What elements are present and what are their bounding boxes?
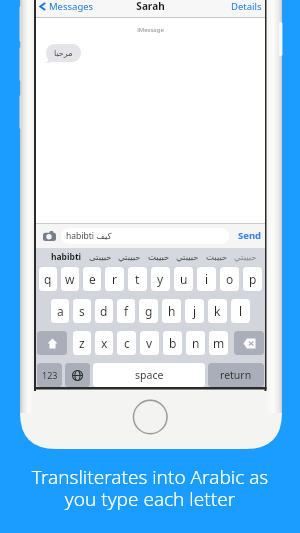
staticText: Messages — [49, 0, 94, 13]
button[interactable]: حبيبتي — [231, 248, 260, 266]
staticText: Sarah — [36, 0, 265, 13]
button[interactable]: t — [128, 267, 147, 291]
button[interactable]: x — [95, 331, 113, 355]
button[interactable]: p — [243, 267, 262, 291]
staticText: حبيبتى — [89, 252, 112, 262]
staticText: habibti كيف — [66, 230, 112, 242]
staticText: a — [57, 303, 64, 319]
staticText: g — [145, 303, 153, 319]
button[interactable]: j — [185, 299, 204, 323]
button[interactable]: k — [208, 299, 227, 323]
button[interactable]: حبيبتي — [173, 248, 202, 266]
staticText: r — [112, 271, 117, 287]
button[interactable]: o — [220, 267, 239, 291]
button[interactable]: m — [209, 331, 228, 355]
staticText: n — [192, 335, 200, 351]
staticText: حبيبتي — [118, 252, 141, 262]
button[interactable]: q — [39, 267, 57, 291]
staticText: Transliterates into Arabic as you type e… — [0, 464, 300, 512]
button[interactable]: Shift — [37, 331, 67, 355]
staticText: iMessage — [36, 26, 265, 34]
button[interactable]: habibti كيف — [61, 228, 229, 244]
staticText: space — [135, 368, 164, 382]
button[interactable]: r — [105, 267, 124, 291]
button[interactable]: Details — [227, 0, 265, 18]
button[interactable]: g — [139, 299, 158, 323]
staticText: l — [239, 303, 243, 319]
staticText: s — [79, 303, 85, 319]
button[interactable]: i — [197, 267, 216, 291]
staticText: e — [89, 271, 96, 287]
staticText: حبيبتي — [176, 252, 199, 262]
button[interactable]: Camera — [41, 228, 57, 244]
button[interactable]: Send — [238, 229, 262, 242]
staticText: w — [65, 271, 75, 287]
staticText: v — [146, 335, 153, 351]
button[interactable]: s — [73, 299, 91, 323]
button[interactable]: w — [61, 267, 79, 291]
button[interactable]: e — [83, 267, 101, 291]
button[interactable]: 123 — [37, 363, 62, 387]
staticText: j — [193, 303, 197, 319]
staticText: return — [220, 368, 252, 382]
staticText: 123 — [42, 369, 58, 381]
button[interactable]: a — [51, 299, 69, 323]
staticText: حبيبت — [148, 252, 170, 262]
staticText: p — [249, 271, 257, 287]
button[interactable]: v — [140, 331, 159, 355]
staticText: h — [168, 303, 176, 319]
button[interactable]: l — [231, 299, 250, 323]
staticText: q — [44, 271, 52, 287]
staticText: x — [101, 335, 108, 351]
button[interactable]: Switch keyboard — [65, 363, 90, 387]
button[interactable]: Messages — [36, 0, 98, 18]
staticText: z — [79, 335, 85, 351]
button[interactable]: حبيبت — [144, 248, 173, 266]
button[interactable]: Backspace — [234, 331, 264, 355]
button[interactable]: return — [208, 363, 264, 387]
button[interactable]: h — [162, 299, 181, 323]
staticText: u — [180, 271, 188, 287]
button[interactable]: مرحبا — [44, 44, 81, 63]
staticText: m — [213, 335, 225, 351]
staticText: حبيبتي — [234, 252, 257, 262]
staticText: i — [205, 271, 209, 287]
staticText: k — [214, 303, 221, 319]
staticText: habibti — [51, 251, 82, 263]
staticText: y — [157, 271, 164, 287]
staticText: o — [226, 271, 234, 287]
button[interactable]: f — [117, 299, 135, 323]
staticText: مرحبا — [54, 49, 73, 58]
button[interactable]: حبيبتى — [86, 248, 115, 266]
button[interactable]: space — [93, 363, 205, 387]
staticText: b — [169, 335, 177, 351]
button[interactable]: c — [117, 331, 136, 355]
button[interactable]: y — [151, 267, 170, 291]
staticText: c — [124, 335, 130, 351]
button[interactable]: b — [163, 331, 182, 355]
button[interactable]: habibti — [47, 248, 86, 266]
button[interactable]: u — [174, 267, 193, 291]
button[interactable]: n — [186, 331, 205, 355]
button[interactable]: حبيبتي — [115, 248, 144, 266]
staticText: حبيبت — [206, 252, 228, 262]
button[interactable]: d — [95, 299, 113, 323]
button[interactable]: z — [73, 331, 91, 355]
staticText: d — [100, 303, 108, 319]
staticText: f — [124, 303, 129, 319]
staticText: t — [135, 271, 140, 287]
button[interactable]: حبيبت — [202, 248, 231, 266]
